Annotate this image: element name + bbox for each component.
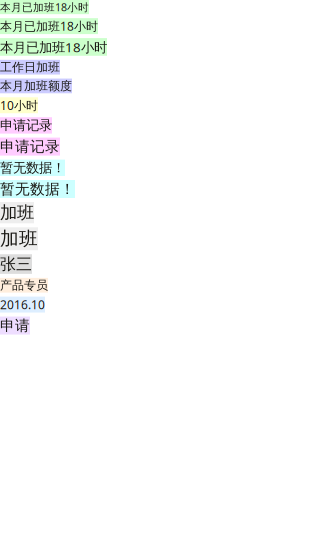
- staticText: 10小时: [0, 97, 38, 113]
- staticText: 申请: [0, 317, 30, 335]
- staticText: 工作日加班: [0, 60, 60, 74]
- staticText: 本月已加班18小时: [0, 18, 98, 34]
- staticText: 申请记录: [0, 117, 52, 134]
- staticText: 暂无数据！: [0, 180, 75, 198]
- staticText: 本月已加班18小时: [0, 38, 107, 56]
- staticText: 加班: [0, 227, 38, 250]
- staticText: 加班: [0, 202, 34, 223]
- staticText: 产品专员: [0, 278, 48, 293]
- staticText: 2016.10: [0, 297, 45, 312]
- staticText: 本月加班额度: [0, 78, 72, 93]
- staticText: 本月已加班18小时: [0, 0, 89, 14]
- staticText: 暂无数据！: [0, 160, 65, 176]
- staticText: 张三: [0, 254, 32, 274]
- staticText: 申请记录: [0, 138, 60, 156]
